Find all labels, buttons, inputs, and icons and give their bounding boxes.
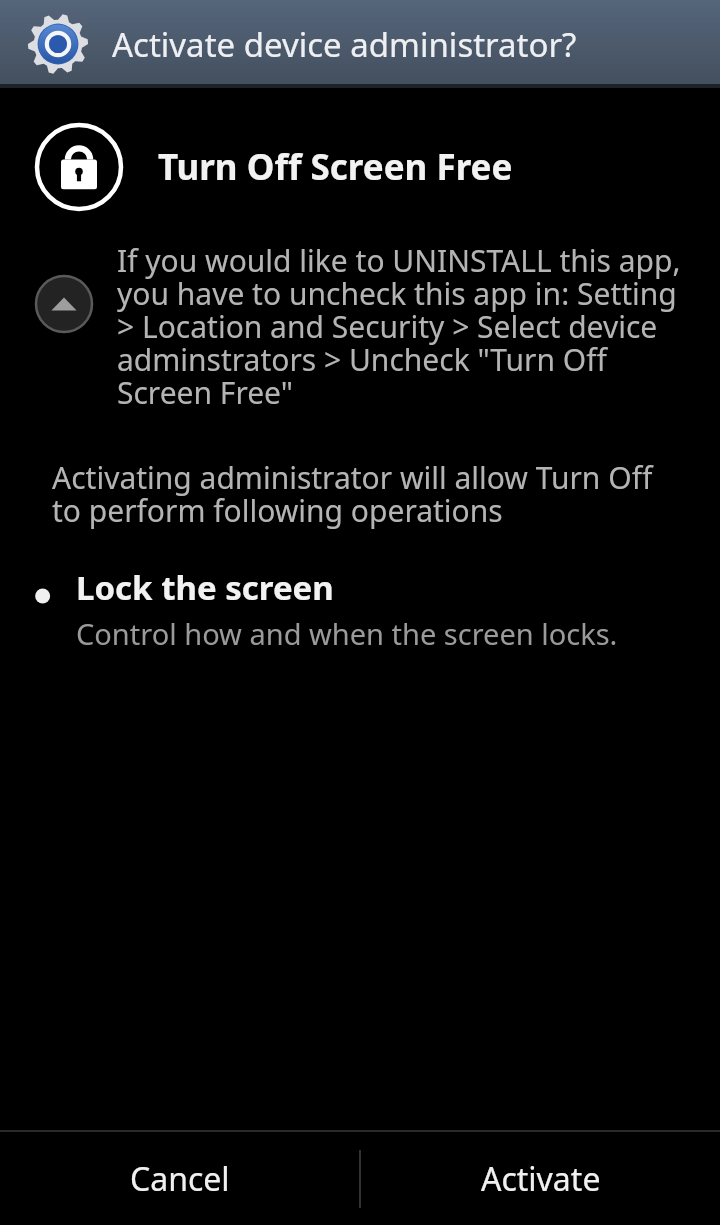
staticText: Activating administrator will allow Turn… xyxy=(52,457,660,531)
staticText: If you would like to UNINSTALL this app,… xyxy=(117,240,686,413)
button[interactable]: Activate xyxy=(361,1132,720,1225)
staticText: Turn Off Screen Free xyxy=(158,143,513,191)
staticText: Activate xyxy=(481,1157,601,1201)
staticText: Activate device administrator? xyxy=(112,22,577,67)
button[interactable]: Collapse description xyxy=(34,274,94,334)
staticText: Cancel xyxy=(130,1157,230,1201)
staticText: Control how and when the screen locks. xyxy=(76,614,618,653)
staticText: Lock the screen xyxy=(76,565,334,610)
button[interactable]: Cancel xyxy=(0,1132,359,1225)
